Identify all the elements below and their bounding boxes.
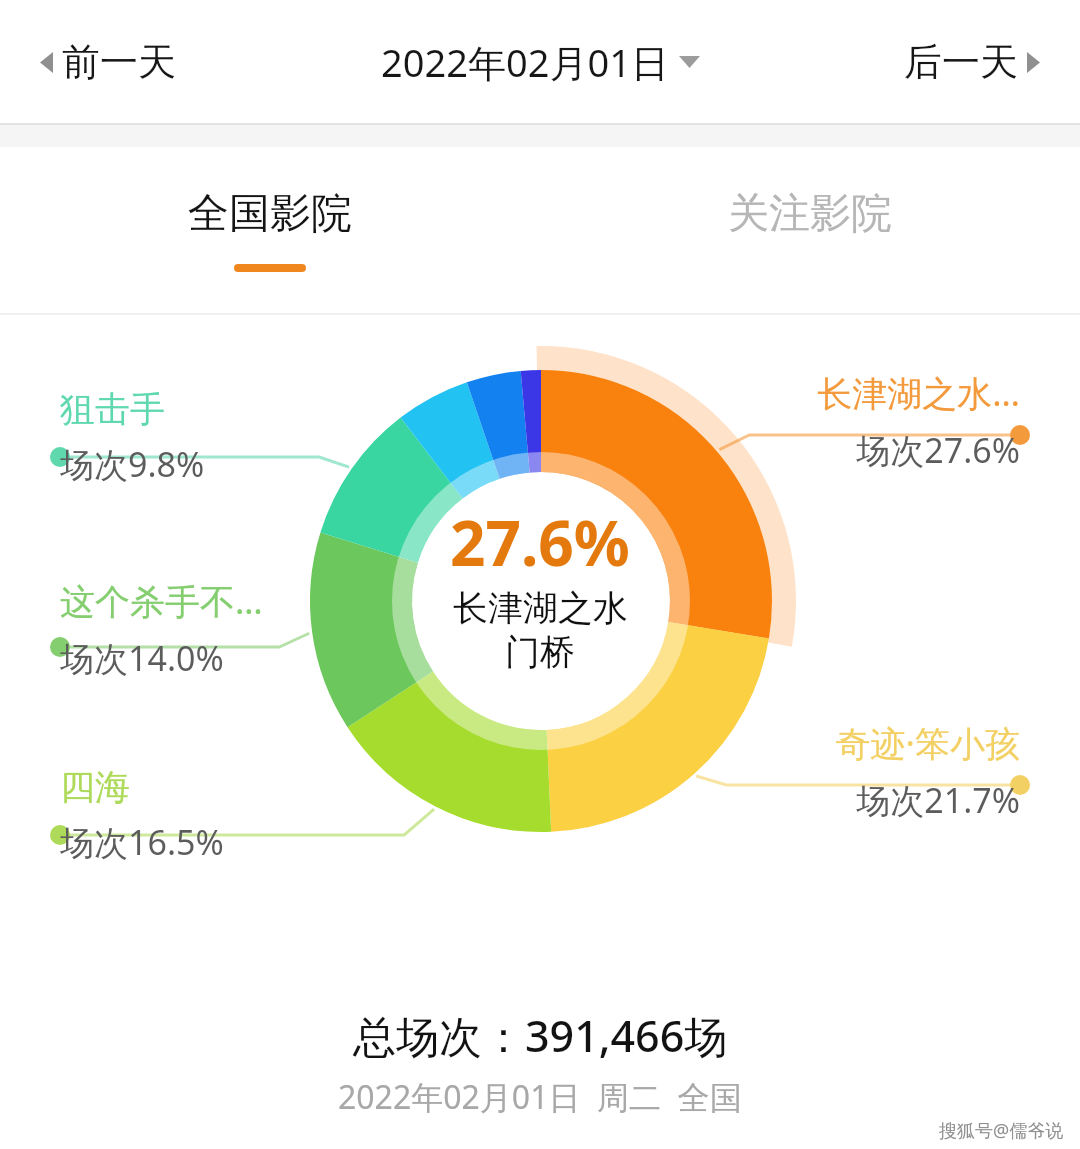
staticText: 后一天 [904,38,1018,86]
staticText: 前一天 [62,38,176,86]
staticText: 场次27.6% [856,427,1020,473]
staticText: 门桥 [505,630,575,674]
staticText: 长津湖之水 [453,586,628,630]
staticText: 长津湖之水… [817,369,1020,417]
staticText: 27.6% [450,500,630,584]
button[interactable]: 这个杀手不… [60,577,263,681]
button[interactable]: 前一天 [34,24,182,100]
button[interactable]: 后一天 [898,24,1046,100]
button[interactable]: 四海 [60,765,224,865]
staticText: 关注影院 [728,188,892,240]
staticText: 2022年02月01日 周二 全国 [338,1075,742,1119]
staticText: 总场次：391,466场 [353,1006,728,1065]
button[interactable]: 长津湖之水… [817,369,1020,473]
button[interactable]: 狙击手 [60,387,205,487]
staticText: 全国影院 [188,188,352,240]
staticText: 场次14.0% [60,635,224,681]
button[interactable]: 奇迹·笨小孩 [835,719,1020,823]
staticText: 奇迹·笨小孩 [835,719,1020,767]
staticText: 狙击手 [60,387,165,431]
staticText: 场次9.8% [60,441,205,487]
staticText: 2022年02月01日 [381,36,669,88]
staticText: 场次21.7% [856,777,1020,823]
staticText: 这个杀手不… [60,577,263,625]
button[interactable]: 全国影院 [0,147,540,313]
button[interactable]: 2022年02月01日 [373,28,708,96]
button[interactable]: 关注影院 [540,147,1080,313]
staticText: 四海 [60,765,130,809]
staticText: 场次16.5% [60,819,224,865]
staticText: 搜狐号@儒爷说 [939,1118,1064,1143]
